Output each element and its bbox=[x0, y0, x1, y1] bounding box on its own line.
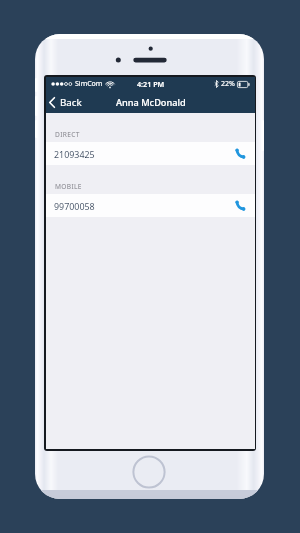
staticText: Back bbox=[60, 96, 82, 109]
staticText: MOBILE bbox=[55, 182, 82, 191]
button[interactable]: 99700058 bbox=[46, 194, 255, 217]
button[interactable]: 21093425 bbox=[46, 142, 255, 165]
button[interactable]: Back bbox=[46, 92, 88, 113]
staticText: DIRECT bbox=[55, 130, 80, 139]
staticText: 21093425 bbox=[54, 148, 95, 160]
other: Call 99700058 bbox=[234, 200, 246, 212]
staticText: Anna McDonald bbox=[116, 96, 186, 109]
staticText: 99700058 bbox=[54, 200, 95, 212]
staticText: SimCom bbox=[75, 79, 103, 89]
staticText: 4:21 PM bbox=[137, 79, 165, 89]
other: Call 21093425 bbox=[234, 148, 246, 160]
staticText: 22% bbox=[221, 79, 235, 89]
